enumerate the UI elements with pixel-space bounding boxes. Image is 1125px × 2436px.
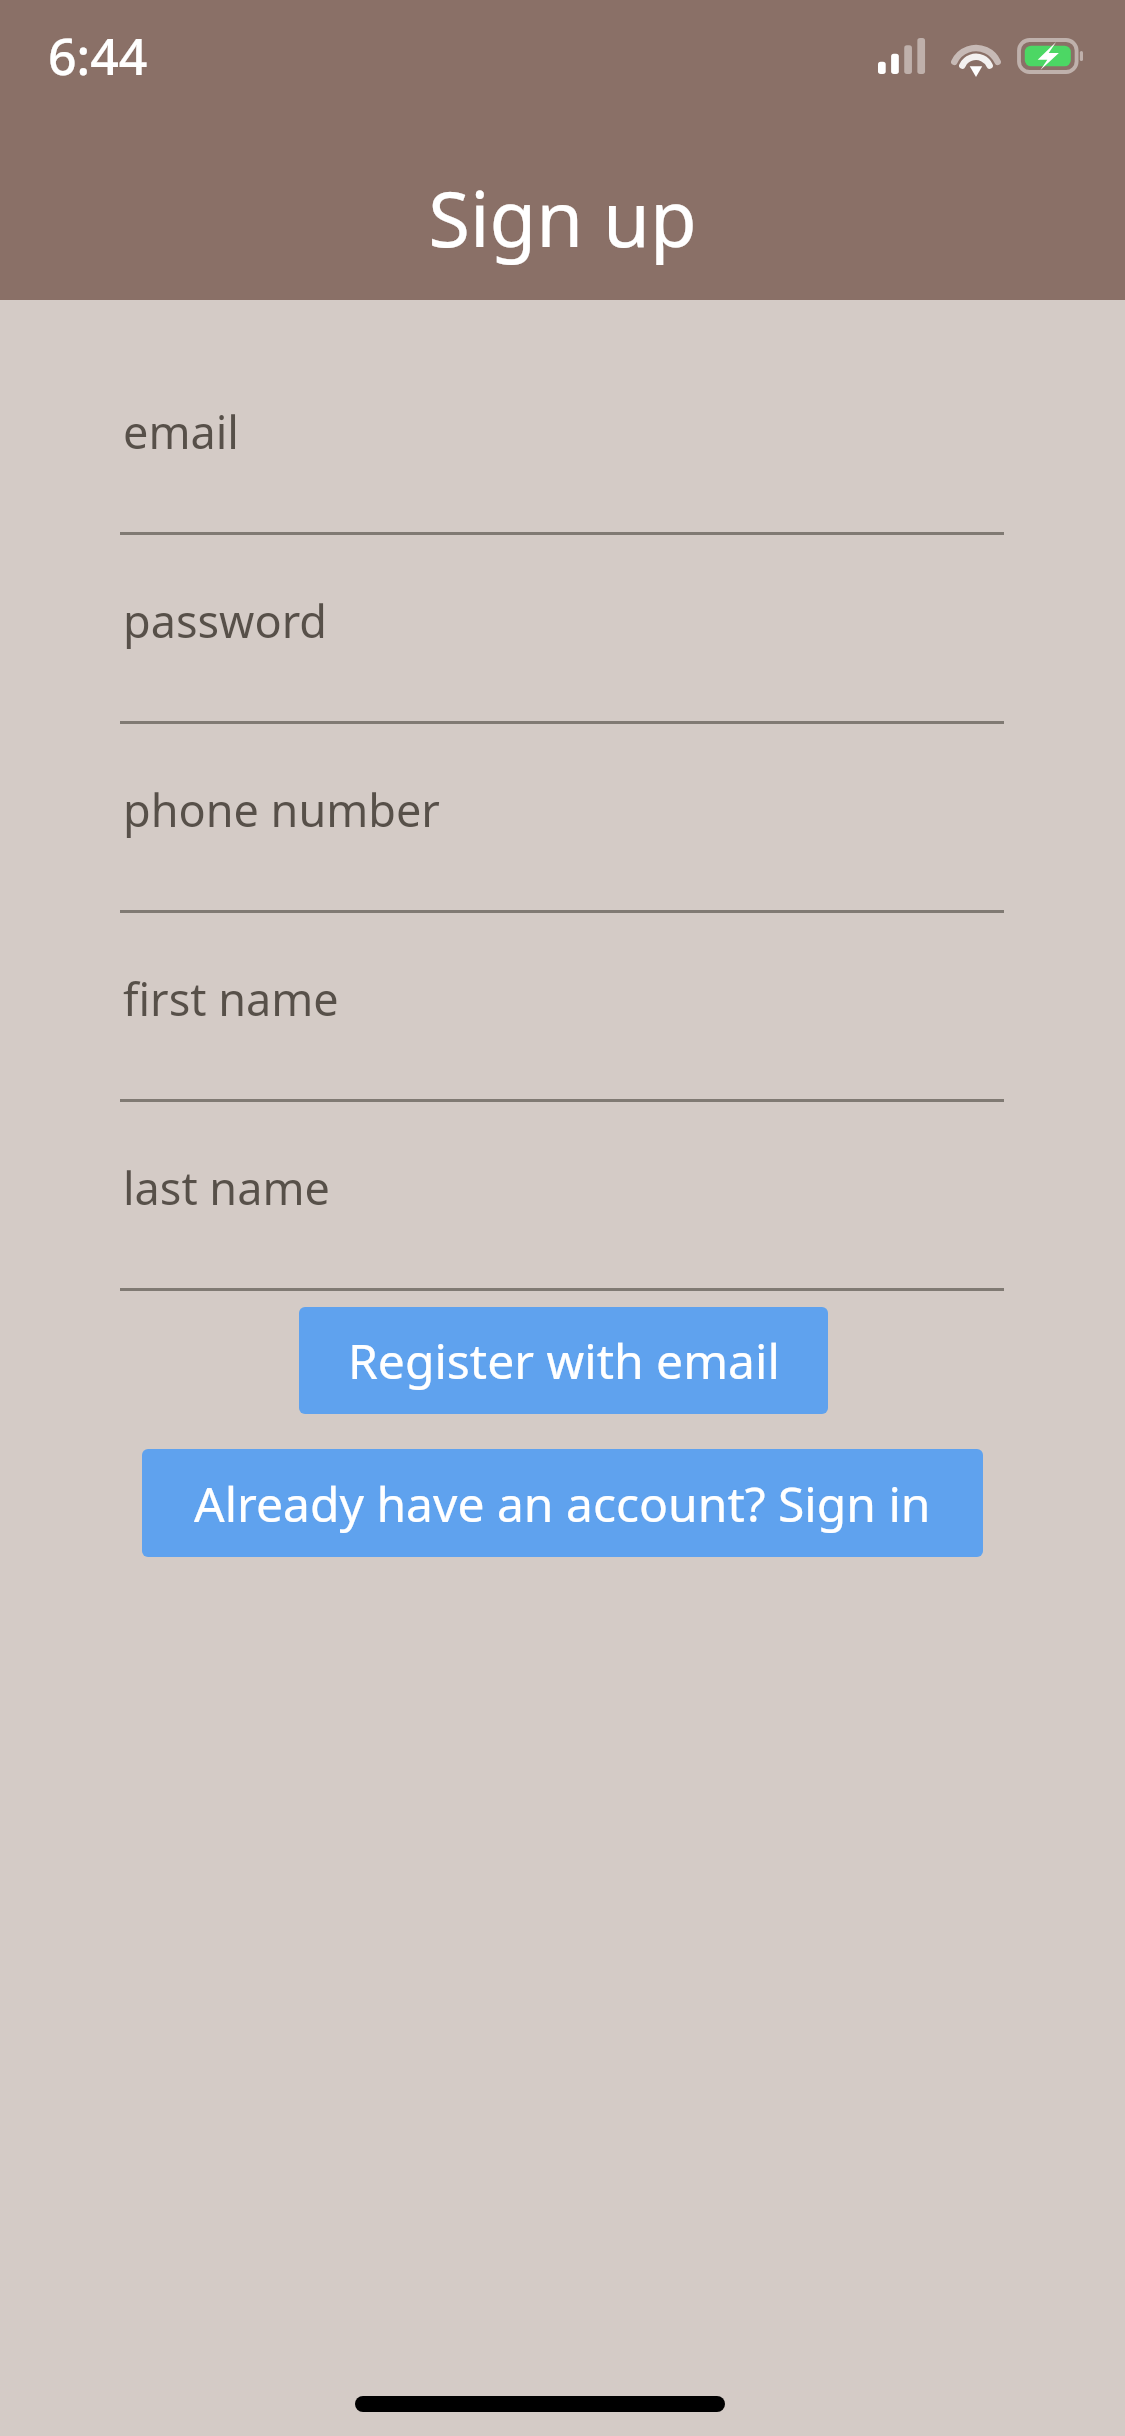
- other: Battery charging: [1019, 40, 1083, 72]
- staticText: Sign up: [0, 166, 1125, 270]
- button[interactable]: Register with email: [299, 1307, 828, 1414]
- button[interactable]: last name: [120, 1157, 1004, 1291]
- staticText: Already have an account? Sign in: [194, 1471, 931, 1536]
- staticText: email: [123, 401, 239, 462]
- button[interactable]: password: [120, 590, 1004, 724]
- staticText: phone number: [123, 779, 440, 840]
- staticText: first name: [123, 968, 339, 1029]
- staticText: 6:44: [48, 22, 148, 90]
- staticText: last name: [123, 1157, 330, 1218]
- other: Cellular signal: [878, 38, 932, 74]
- button[interactable]: email: [120, 401, 1004, 535]
- staticText: Register with email: [348, 1328, 780, 1393]
- button[interactable]: first name: [120, 968, 1004, 1102]
- button[interactable]: Already have an account? Sign in: [142, 1449, 983, 1557]
- staticText: password: [123, 590, 327, 651]
- other: Wi-Fi: [950, 37, 1002, 75]
- button[interactable]: phone number: [120, 779, 1004, 913]
